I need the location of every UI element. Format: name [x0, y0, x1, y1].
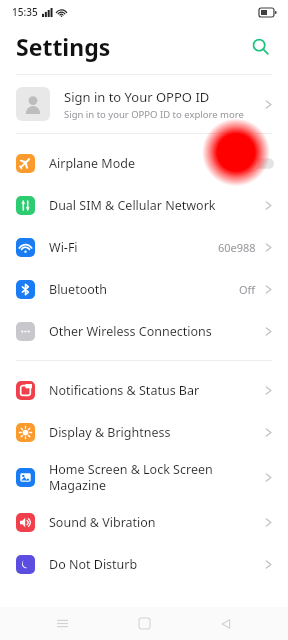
button[interactable]: Notifications & Status Bar: [0, 369, 288, 411]
staticText: Sign in to Your OPPO ID: [64, 88, 210, 106]
staticText: Airplane Mode: [49, 155, 242, 172]
staticText: Display & Brightness: [49, 424, 263, 441]
staticText: Sign in to your OPPO ID to explore more: [64, 108, 244, 121]
button[interactable]: Search: [244, 30, 276, 62]
staticText: Bluetooth: [49, 281, 239, 298]
button[interactable]: Sign in to Your OPPO ID: [0, 75, 288, 133]
staticText: Other Wireless Connections: [49, 323, 263, 340]
staticText: 60e988: [218, 240, 256, 255]
button[interactable]: Airplane Mode: [0, 142, 288, 184]
staticText: 15:35: [12, 5, 38, 19]
staticText: Off: [239, 282, 256, 297]
staticText: Home Screen & Lock Screen Magazine: [49, 461, 263, 493]
button[interactable]: Do Not Disturb: [0, 543, 288, 585]
button[interactable]: Airplane Mode toggle: [242, 155, 274, 172]
button[interactable]: Wi-Fi: [0, 226, 288, 268]
button[interactable]: Home: [124, 607, 164, 640]
button[interactable]: Dual SIM & Cellular Network: [0, 184, 288, 226]
staticText: Dual SIM & Cellular Network: [49, 197, 263, 214]
button[interactable]: Recent apps: [42, 607, 82, 640]
staticText: Settings: [16, 31, 111, 62]
button[interactable]: Home Screen & Lock Screen Magazine: [0, 453, 288, 501]
button[interactable]: Display & Brightness: [0, 411, 288, 453]
button[interactable]: Sound & Vibration: [0, 501, 288, 543]
staticText: Do Not Disturb: [49, 556, 263, 573]
button[interactable]: Other Wireless Connections: [0, 310, 288, 352]
staticText: Notifications & Status Bar: [49, 382, 263, 399]
button[interactable]: Bluetooth: [0, 268, 288, 310]
staticText: Sound & Vibration: [49, 514, 263, 531]
staticText: Wi-Fi: [49, 239, 218, 256]
button[interactable]: Back: [206, 607, 246, 640]
